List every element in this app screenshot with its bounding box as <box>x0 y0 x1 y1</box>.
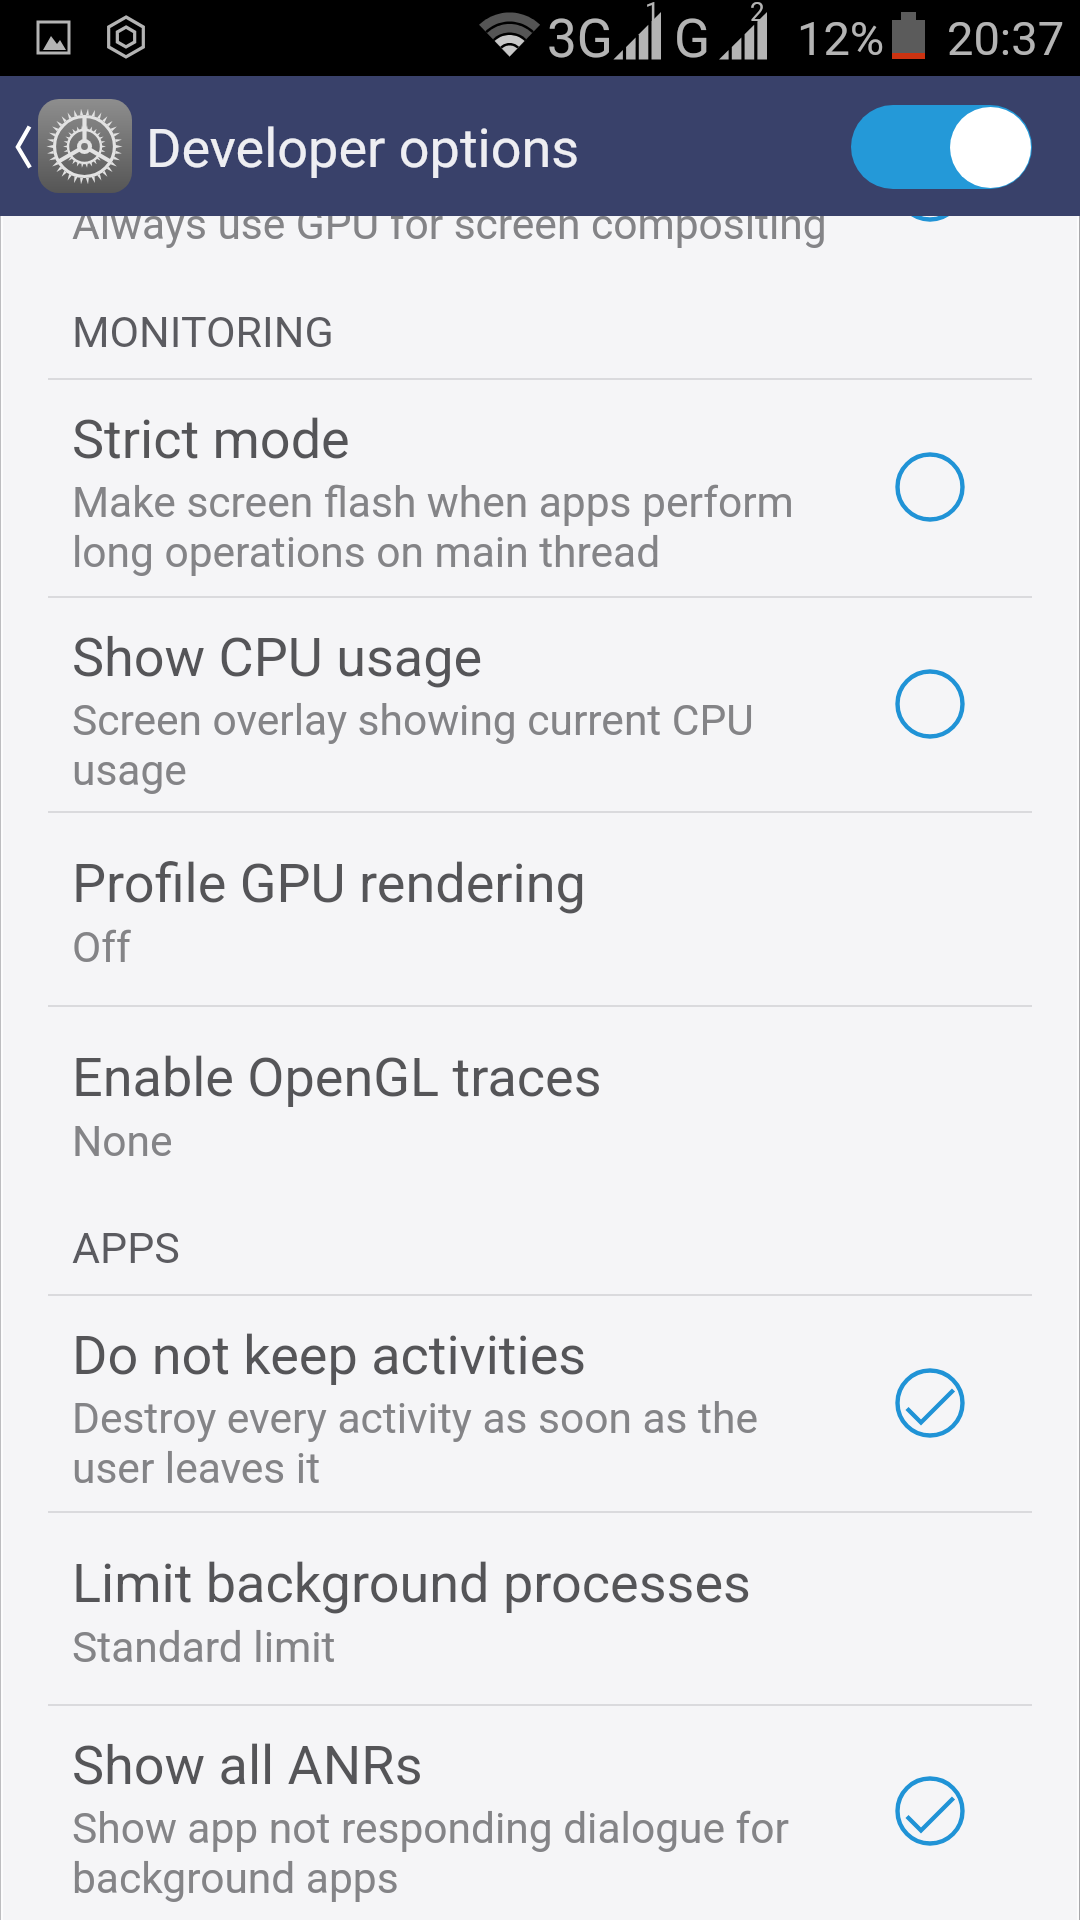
staticText: Always use GPU for screen compositing <box>72 200 827 250</box>
staticText: G <box>674 8 711 70</box>
staticText: Show app not responding dialogue for <box>72 1804 789 1854</box>
staticText: APPS <box>72 1223 180 1273</box>
button[interactable]: Checked <box>875 1348 985 1458</box>
staticText: Destroy every activity as soon as the <box>72 1394 758 1444</box>
staticText: Show CPU usage <box>72 626 483 689</box>
button[interactable]: Show CPU usage <box>0 596 1080 811</box>
button[interactable]: Do not keep activities <box>0 1294 1080 1511</box>
staticText: Do not keep activities <box>72 1324 587 1387</box>
button[interactable]: Checked <box>875 1756 985 1866</box>
staticText: long operations on main thread <box>72 528 661 578</box>
staticText: 2 <box>750 0 765 27</box>
button[interactable]: Profile GPU rendering <box>0 811 1080 1005</box>
button[interactable]: Strict mode <box>0 378 1080 596</box>
staticText: Profile GPU rendering <box>72 852 586 915</box>
button[interactable]: Navigate up <box>0 76 140 216</box>
button[interactable]: Enable OpenGL traces <box>0 1005 1080 1200</box>
staticText: Standard limit <box>72 1623 336 1673</box>
staticText: Make screen flash when apps perform <box>72 478 794 528</box>
button[interactable]: Show all ANRs <box>0 1704 1080 1917</box>
staticText: 20:37 <box>947 11 1065 66</box>
staticText: Enable OpenGL traces <box>72 1046 602 1109</box>
staticText: Developer options <box>146 117 580 180</box>
button[interactable]: Unchecked <box>875 432 985 542</box>
staticText: Limit background processes <box>72 1552 751 1615</box>
staticText: Show all ANRs <box>72 1734 423 1797</box>
staticText: Strict mode <box>72 408 350 471</box>
staticText: MONITORING <box>72 307 334 357</box>
staticText: user leaves it <box>72 1444 321 1494</box>
staticText: usage <box>72 746 187 796</box>
staticText: background apps <box>72 1854 399 1904</box>
staticText: 1 <box>645 0 660 27</box>
staticText: Screen overlay showing current CPU <box>72 696 754 746</box>
staticText: Off <box>72 923 131 973</box>
staticText: 3G <box>547 8 613 70</box>
staticText: None <box>72 1117 173 1167</box>
button[interactable]: Limit background processes <box>0 1511 1080 1709</box>
staticText: 12% <box>797 11 885 66</box>
button[interactable]: Unchecked <box>875 649 985 759</box>
button[interactable]: Developer options on <box>851 105 1032 189</box>
button[interactable]: Always use GPU for screen compositing <box>0 0 1080 280</box>
